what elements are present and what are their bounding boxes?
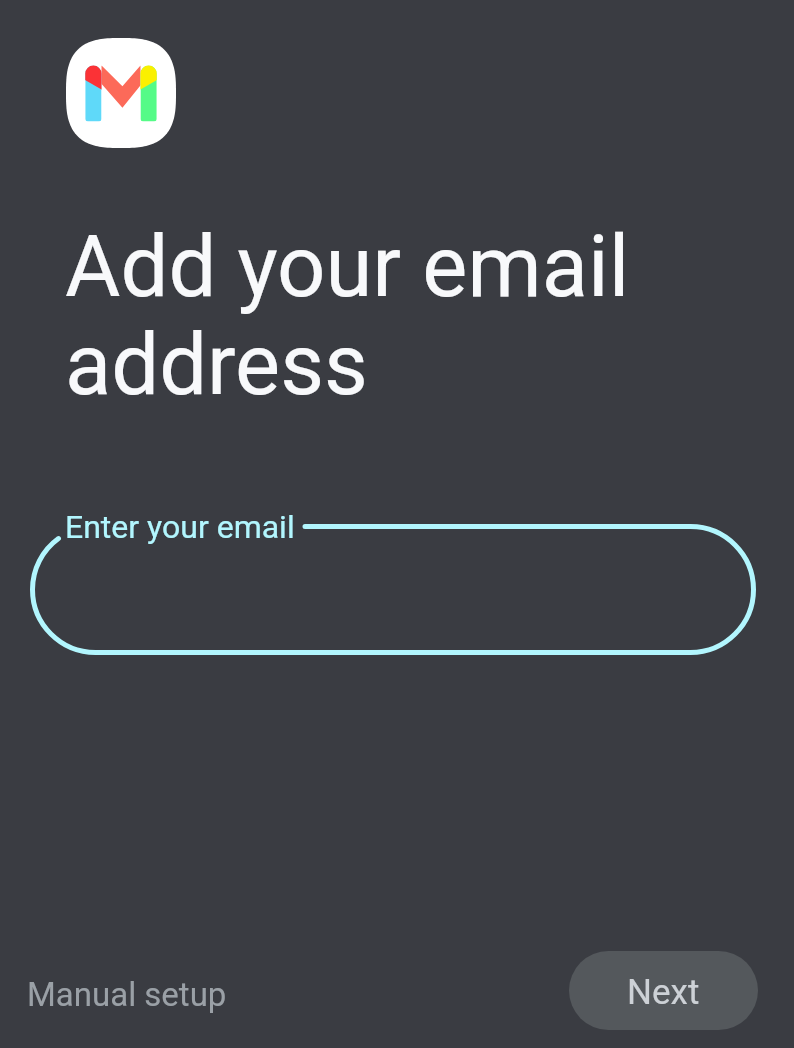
staticText: Add your email address (65, 217, 630, 415)
staticText: Enter your email (65, 508, 295, 546)
staticText: Manual setup (27, 975, 227, 1014)
button[interactable]: Enter your email (30, 524, 756, 655)
button[interactable]: Manual setup (15, 963, 239, 1026)
other: Gmail (66, 38, 176, 148)
staticText: Next (627, 972, 700, 1013)
button[interactable]: Next (569, 951, 758, 1030)
